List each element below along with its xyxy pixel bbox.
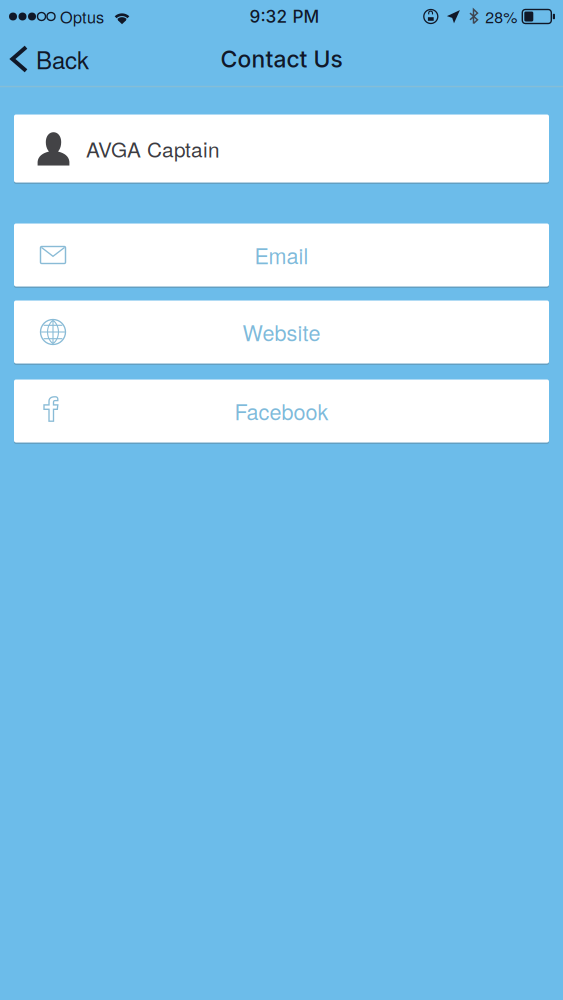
staticText: 9:32 PM bbox=[249, 6, 319, 27]
button[interactable]: Facebook bbox=[14, 378, 549, 444]
button[interactable]: Website bbox=[14, 299, 549, 365]
staticText: AVGA Captain bbox=[86, 134, 220, 163]
button[interactable]: Email bbox=[14, 222, 549, 288]
staticText: Back bbox=[36, 42, 89, 76]
staticText: Contact Us bbox=[220, 45, 342, 73]
staticText: Facebook bbox=[234, 395, 328, 426]
button[interactable]: Back bbox=[0, 33, 103, 85]
staticText: Optus bbox=[60, 5, 104, 28]
staticText: 28% bbox=[485, 5, 517, 28]
staticText: Email bbox=[254, 239, 308, 270]
staticText: Website bbox=[242, 316, 320, 347]
button[interactable]: AVGA Captain bbox=[14, 113, 549, 184]
